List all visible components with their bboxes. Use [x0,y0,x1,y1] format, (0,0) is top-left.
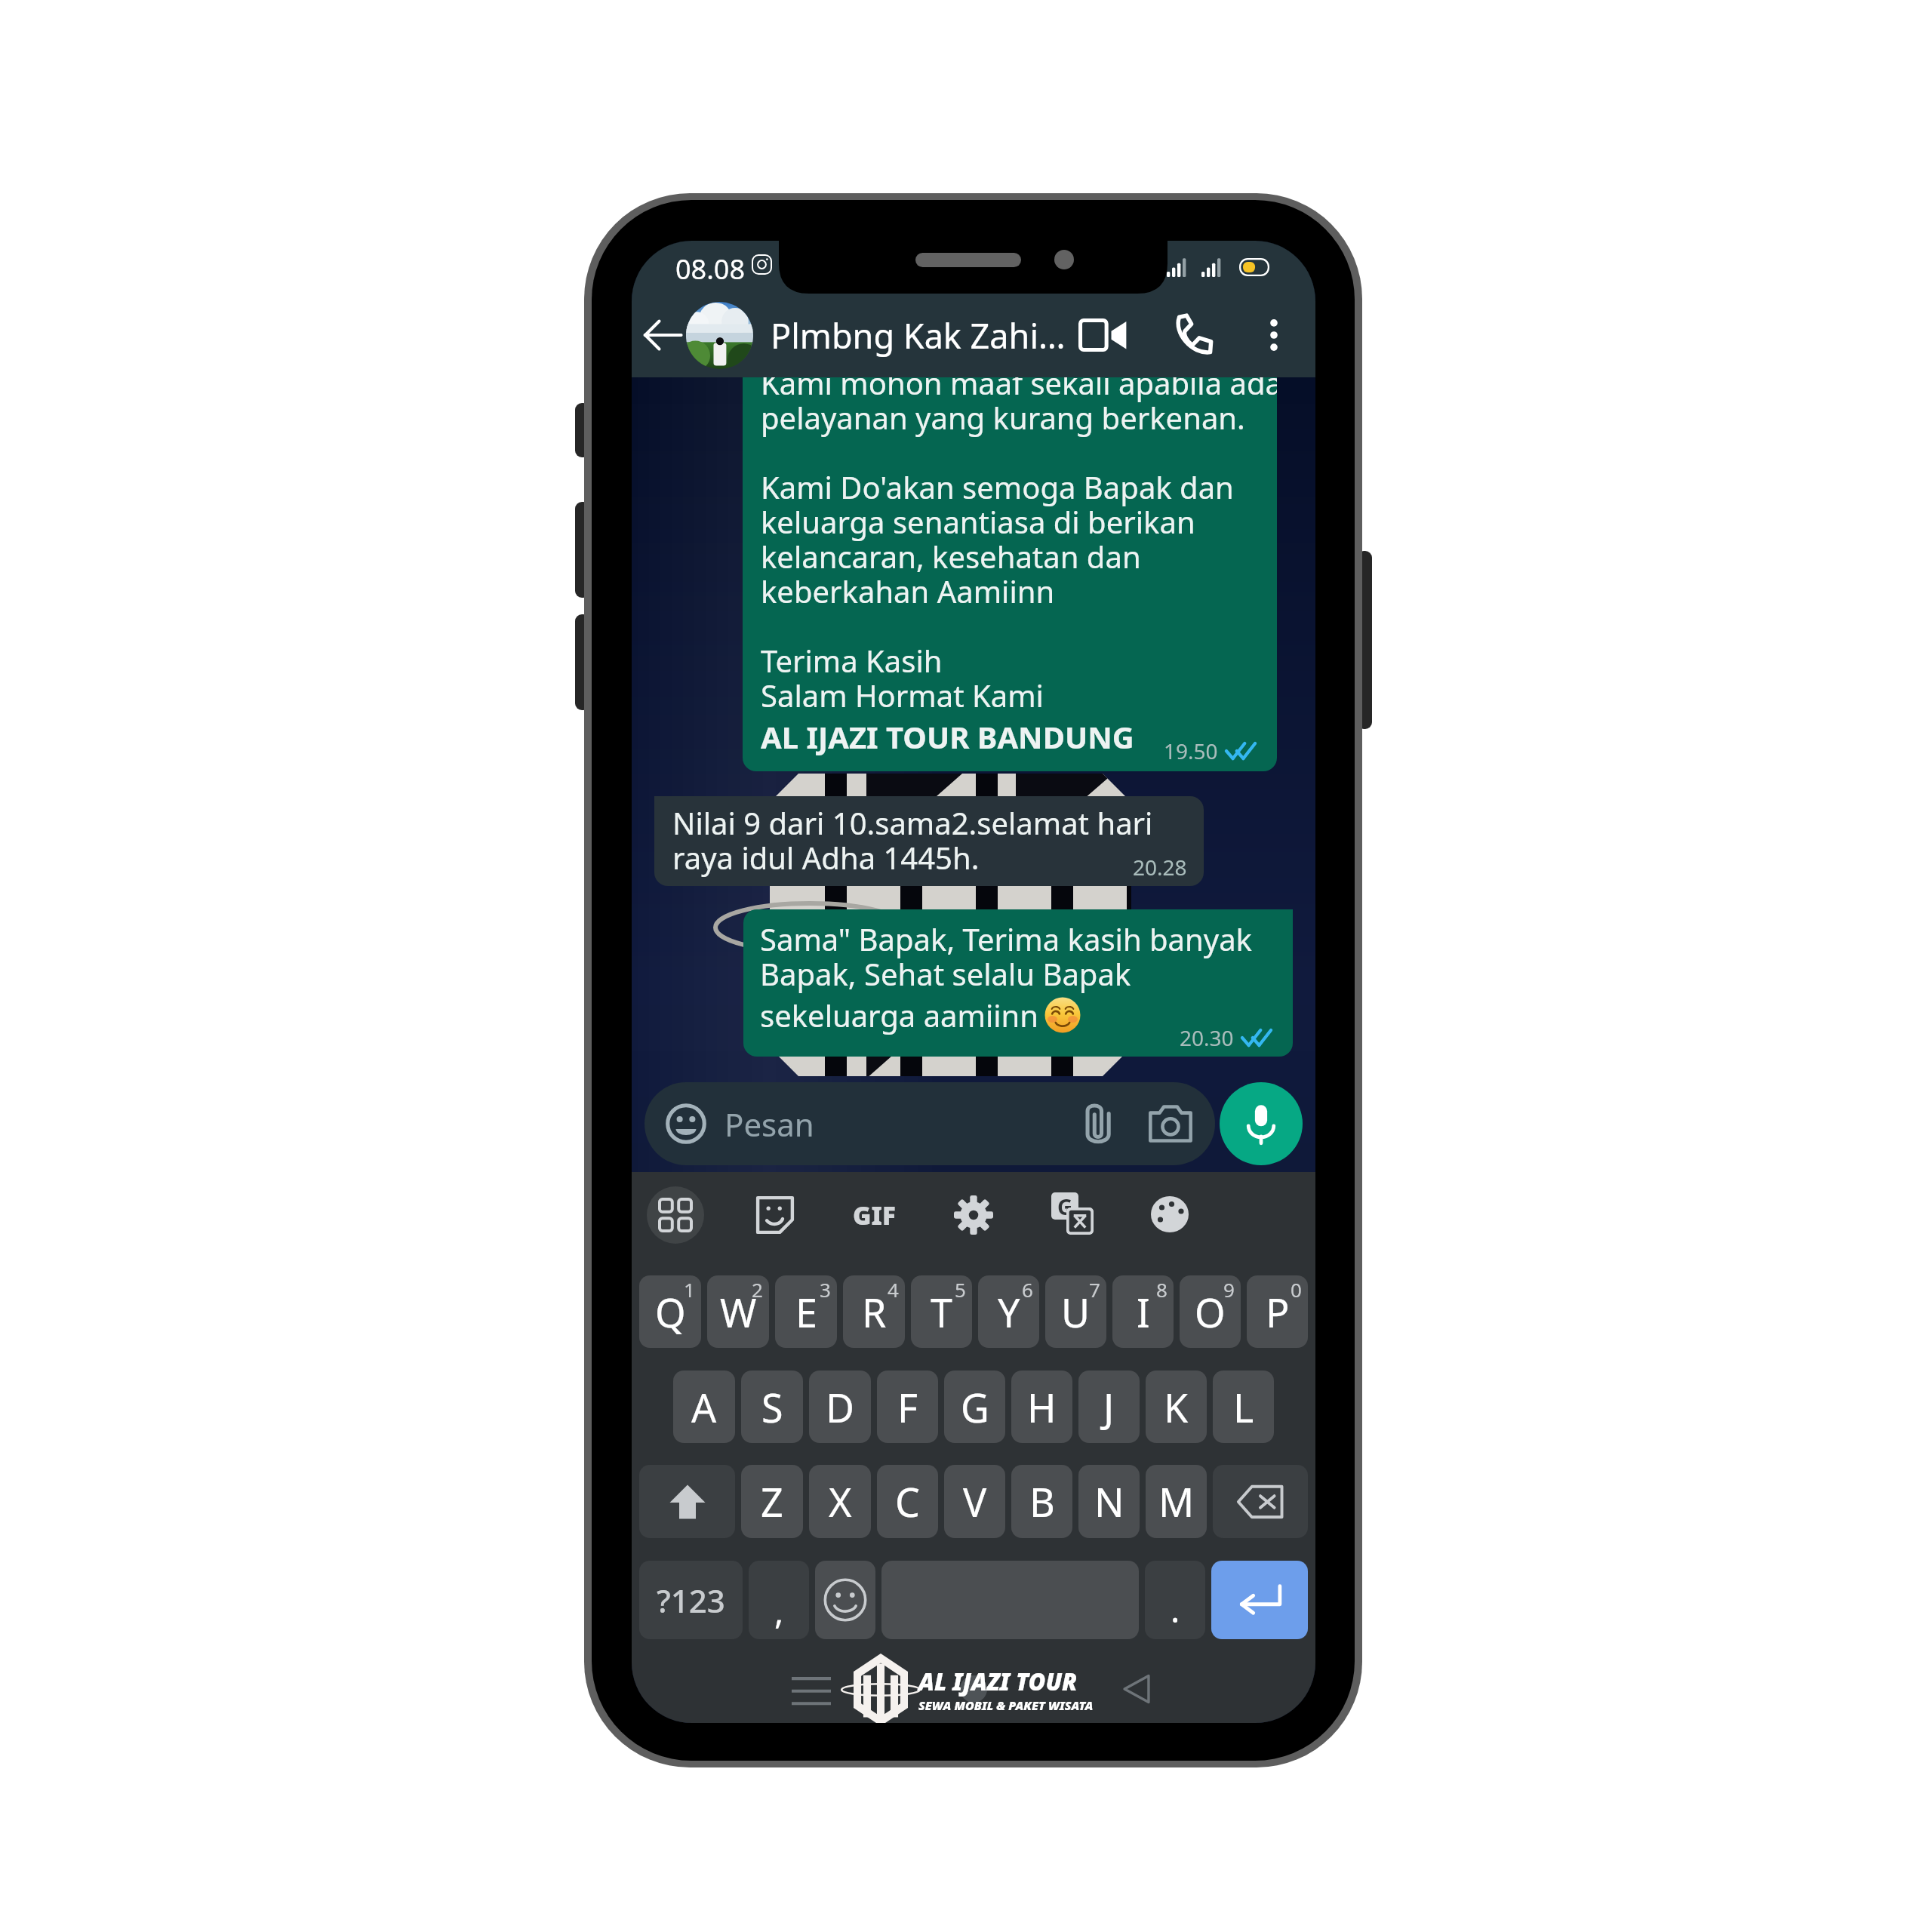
button[interactable]: Z [741,1465,803,1538]
button[interactable]: L [1213,1371,1274,1443]
staticText: 5 [955,1276,966,1303]
staticText: 08.08 [675,251,746,288]
button[interactable]: Back [1109,1662,1164,1716]
button[interactable]: Voice call [1166,307,1222,363]
button[interactable]: F [877,1371,938,1443]
button[interactable]: A [673,1371,735,1443]
button[interactable]: GIF [848,1189,900,1241]
button[interactable]: T [911,1275,972,1348]
button[interactable]: B [1011,1465,1072,1538]
button[interactable]: More options [1252,313,1296,357]
button[interactable]: Back [638,310,688,360]
staticText: V [963,1475,987,1528]
staticText: Sama" Bapak, Terima kasih banyak Bapak, … [760,918,1252,995]
staticText: K [1164,1380,1189,1434]
staticText: Kami mohon maaf sekali apabila ada pelay… [761,362,1277,716]
button[interactable]: Recents [784,1662,838,1716]
button[interactable]: Nilai 9 dari 10.sama2.selamat hari raya … [654,796,1204,886]
staticText: 9 [1223,1276,1235,1303]
button[interactable]: D [809,1371,871,1443]
staticText: 1 [684,1276,695,1303]
staticText: O [1195,1285,1226,1339]
button[interactable]: O [1180,1275,1241,1348]
staticText: R [862,1285,887,1339]
button[interactable]: Voice message [1220,1082,1303,1165]
staticText: 2 [752,1276,763,1303]
button[interactable]: J [1078,1371,1140,1443]
button[interactable]: X [809,1465,871,1538]
staticText: C [895,1475,920,1528]
staticText: W [720,1285,757,1339]
staticText: sekeluarga aamiinn [760,995,1039,1035]
staticText: 20.28 [1133,853,1187,881]
button[interactable]: K [1146,1371,1207,1443]
staticText: L [1233,1380,1254,1434]
button[interactable]: Translate [1049,1190,1096,1237]
staticText: Z [761,1475,783,1528]
staticText: 3 [820,1276,831,1303]
staticText: Pesan [724,1103,814,1146]
staticText: ?123 [657,1579,725,1622]
button[interactable]: R [843,1275,905,1348]
staticText: G [1057,1192,1073,1220]
button[interactable]: Sama" Bapak, Terima kasih banyak Bapak, … [743,909,1293,1057]
staticText: H [1027,1380,1057,1434]
button[interactable]: , [749,1561,809,1639]
button[interactable]: Emoji [815,1561,875,1639]
button[interactable]: Pesan [645,1082,1215,1165]
button[interactable]: U [1045,1275,1106,1348]
staticText: P [1266,1285,1290,1339]
staticText: AL IJAZI TOUR BANDUNG [761,716,1134,757]
button[interactable]: Enter [1211,1561,1308,1639]
button[interactable]: Theme [1146,1192,1193,1238]
button[interactable]: I [1112,1275,1174,1348]
staticText: 8 [1156,1276,1168,1303]
staticText: F [897,1380,918,1434]
button[interactable]: Stickers [752,1192,798,1238]
staticText: X [829,1475,852,1528]
staticText: D [826,1380,854,1434]
staticText: Y [998,1285,1020,1339]
staticText: 7 [1089,1276,1100,1303]
staticText: T [931,1285,952,1339]
staticText: 4 [888,1276,899,1303]
button[interactable]: G [944,1371,1005,1443]
button[interactable]: Apps [647,1186,704,1244]
button[interactable]: S [741,1371,803,1443]
staticText: J [1103,1380,1115,1434]
button[interactable]: Backspace [1213,1465,1308,1538]
button[interactable]: Kami mohon maaf sekali apabila ada pelay… [743,339,1277,771]
button[interactable]: V [944,1465,1005,1538]
button[interactable]: Shift [639,1465,735,1538]
staticText: M [1158,1475,1195,1528]
staticText: Nilai 9 dari 10.sama2.selamat hari raya … [672,802,1153,878]
button[interactable]: Video call [1075,307,1131,363]
button[interactable]: Q [639,1275,701,1348]
staticText: U [1061,1285,1091,1339]
staticText: SEWA MOBIL & PAKET WISATA [918,1697,1094,1714]
staticText: 0 [1291,1276,1302,1303]
button[interactable]: . [1145,1561,1205,1639]
staticText: S [761,1380,783,1434]
staticText: , [774,1587,784,1635]
button[interactable]: Home [946,1662,1001,1716]
staticText: GIF [853,1198,896,1232]
staticText: Plmbng Kak Zahi… [771,312,1066,358]
button[interactable]: H [1011,1371,1072,1443]
staticText: 20.30 [1180,1023,1234,1052]
button[interactable]: P [1247,1275,1308,1348]
staticText: Q [655,1285,686,1339]
staticText: . [1171,1586,1180,1633]
button[interactable]: Y [978,1275,1039,1348]
button[interactable]: N [1078,1465,1140,1538]
button[interactable]: C [877,1465,938,1538]
staticText: G [961,1380,989,1434]
button[interactable]: ?123 [639,1561,743,1639]
button[interactable]: Profile photo [686,302,753,369]
button[interactable]: M [1146,1465,1207,1538]
button[interactable]: E [775,1275,837,1348]
button[interactable]: Settings [950,1192,997,1238]
button[interactable]: W [707,1275,769,1348]
staticText: I [1137,1285,1150,1339]
